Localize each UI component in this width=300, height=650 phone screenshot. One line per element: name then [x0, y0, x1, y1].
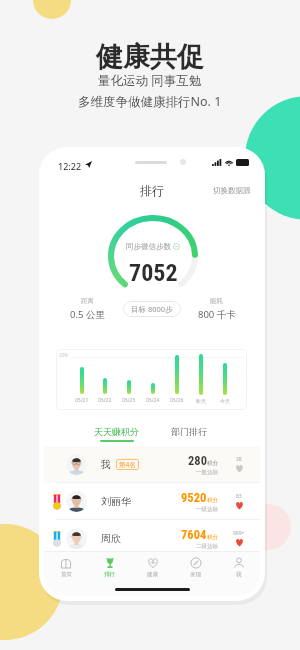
- staticText: 今天: [220, 398, 230, 404]
- staticText: 刘丽华: [101, 495, 131, 508]
- staticText: 部门排行: [171, 426, 207, 437]
- staticText: 同步微信步数: [126, 242, 171, 251]
- staticText: 昨天: [196, 398, 206, 404]
- staticText: 量化运动 同事互勉: [98, 72, 202, 89]
- staticText: 05/22: [98, 397, 112, 404]
- staticText: 排行: [104, 571, 115, 578]
- staticText: 63: [236, 493, 242, 500]
- staticText: 999+: [233, 530, 245, 537]
- button[interactable]: Like: [230, 493, 248, 510]
- button[interactable]: 健康: [131, 552, 174, 582]
- staticText: 多维度争做健康排行No. 1: [78, 93, 222, 110]
- staticText: 天天赚积分: [94, 426, 139, 437]
- button[interactable]: 刘丽华: [44, 483, 260, 520]
- staticText: 健康共促: [96, 40, 204, 74]
- button[interactable]: 切换数据源: [207, 182, 260, 199]
- staticText: 20%: [59, 352, 68, 358]
- staticText: 距离: [81, 297, 94, 305]
- button[interactable]: 周欣: [44, 520, 260, 557]
- staticText: 280: [188, 453, 207, 468]
- staticText: 健康: [147, 571, 158, 578]
- button[interactable]: 排行: [88, 552, 131, 582]
- staticText: 7052: [129, 259, 178, 287]
- staticText: 800 千卡: [198, 308, 236, 321]
- staticText: 能耗: [210, 297, 223, 305]
- button[interactable]: 部门排行: [163, 424, 215, 439]
- button[interactable]: 首页: [44, 552, 88, 582]
- staticText: 第4名: [119, 460, 136, 469]
- staticText: 一般达标: [196, 469, 218, 476]
- staticText: 我: [101, 458, 111, 471]
- staticText: 首页: [61, 571, 72, 578]
- staticText: 排行: [140, 183, 164, 198]
- staticText: 05/24: [146, 397, 160, 404]
- staticText: 12:22: [58, 160, 82, 172]
- staticText: 我: [236, 571, 242, 578]
- staticText: 目标 8000步: [131, 304, 173, 314]
- staticText: 7604: [181, 527, 207, 542]
- staticText: 积分: [207, 534, 218, 541]
- staticText: 周欣: [101, 532, 121, 545]
- button[interactable]: Like: [230, 456, 248, 473]
- staticText: 切换数据源: [213, 186, 251, 195]
- button[interactable]: 我: [217, 552, 260, 582]
- staticText: 积分: [207, 460, 218, 467]
- button[interactable]: 目标 8000步: [123, 301, 181, 317]
- button[interactable]: 我: [44, 446, 260, 483]
- staticText: 发现: [190, 571, 201, 578]
- staticText: 05/26: [170, 397, 184, 404]
- button[interactable]: 天天赚积分: [86, 424, 147, 444]
- staticText: 二级达标: [196, 543, 218, 550]
- staticText: 0.5 公里: [70, 308, 105, 321]
- button[interactable]: Like: [230, 530, 248, 547]
- staticText: 05/21: [75, 397, 89, 404]
- button[interactable]: 发现: [174, 552, 217, 582]
- staticText: 9520: [181, 490, 207, 505]
- staticText: 积分: [207, 497, 218, 504]
- staticText: 28: [236, 456, 242, 463]
- staticText: 一级达标: [196, 506, 218, 513]
- staticText: 05/23: [122, 397, 136, 404]
